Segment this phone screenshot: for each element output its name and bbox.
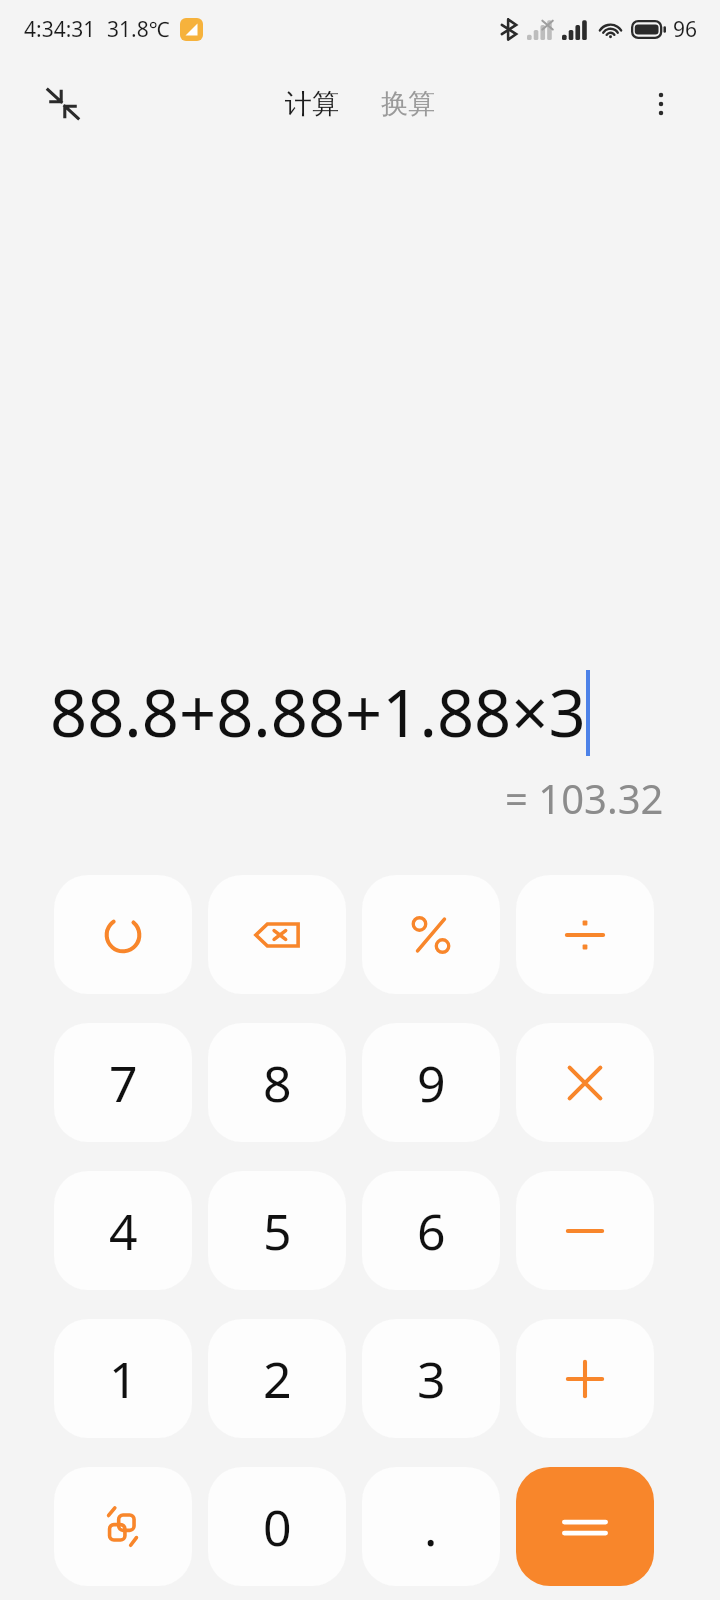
staticText: 换算: [381, 87, 435, 121]
staticText: 3: [417, 1345, 446, 1413]
staticText: 8: [263, 1049, 292, 1117]
staticText: 31.8℃: [107, 15, 170, 44]
staticText: 4: [109, 1197, 138, 1265]
button[interactable]: 计算: [277, 81, 347, 127]
button[interactable]: 1: [54, 1319, 192, 1438]
button[interactable]: Collapse: [34, 75, 92, 133]
button[interactable]: Clear: [54, 875, 192, 994]
button[interactable]: 换算: [373, 81, 443, 127]
button[interactable]: Multiply: [516, 1023, 654, 1142]
button[interactable]: Plus: [516, 1319, 654, 1438]
button[interactable]: .: [362, 1467, 500, 1586]
button[interactable]: More options: [632, 75, 690, 133]
staticText: 0: [263, 1493, 292, 1561]
staticText: 7: [109, 1049, 138, 1117]
button[interactable]: Unit conversion: [54, 1467, 192, 1586]
staticText: 9: [417, 1049, 446, 1117]
staticText: 2: [263, 1345, 292, 1413]
button[interactable]: 6: [362, 1171, 500, 1290]
button[interactable]: 0: [208, 1467, 346, 1586]
staticText: 4:34:31: [24, 15, 96, 44]
button[interactable]: 4: [54, 1171, 192, 1290]
button[interactable]: Minus: [516, 1171, 654, 1290]
button[interactable]: Backspace: [208, 875, 346, 994]
staticText: = 103.32: [505, 771, 664, 825]
staticText: 计算: [285, 87, 339, 121]
button[interactable]: 8: [208, 1023, 346, 1142]
button[interactable]: 9: [362, 1023, 500, 1142]
button[interactable]: Divide: [516, 875, 654, 994]
button[interactable]: 3: [362, 1319, 500, 1438]
staticText: 5: [263, 1197, 292, 1265]
staticText: 1: [109, 1345, 138, 1413]
staticText: .: [424, 1493, 438, 1561]
button[interactable]: Equals: [516, 1467, 654, 1586]
staticText: 6: [417, 1197, 446, 1265]
staticText: 88.8+8.88+1.88×3: [50, 668, 586, 757]
button[interactable]: 2: [208, 1319, 346, 1438]
button[interactable]: 7: [54, 1023, 192, 1142]
staticText: 96: [673, 15, 698, 44]
button[interactable]: Percent: [362, 875, 500, 994]
button[interactable]: 5: [208, 1171, 346, 1290]
